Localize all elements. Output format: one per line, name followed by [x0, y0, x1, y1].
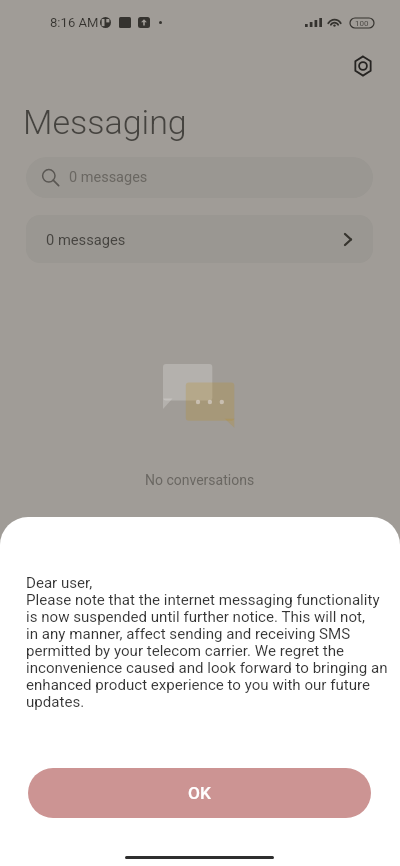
- staticText: 8:16 AM: [50, 15, 99, 30]
- staticText: 0 messages: [46, 231, 126, 248]
- staticText: OK: [188, 783, 211, 803]
- staticText: 100: [355, 19, 369, 28]
- staticText: Messaging: [23, 102, 187, 142]
- button[interactable]: OK: [28, 768, 371, 818]
- staticText: Dear user, Please note that the internet…: [26, 574, 388, 710]
- staticText: No conversations: [145, 472, 255, 488]
- staticText: 0 messages: [69, 169, 148, 186]
- button[interactable]: 0 messages: [26, 215, 373, 263]
- button[interactable]: Settings: [351, 54, 375, 78]
- button[interactable]: 0 messages: [26, 157, 373, 198]
